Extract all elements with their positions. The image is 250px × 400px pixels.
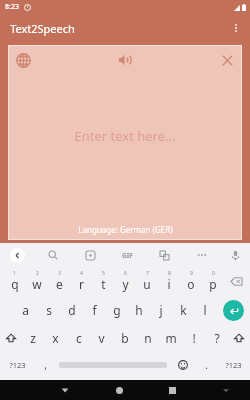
button[interactable]: Search: [34, 243, 72, 267]
staticText: o: [187, 276, 195, 292]
staticText: h: [135, 302, 143, 318]
button[interactable]: v: [90, 324, 113, 352]
button[interactable]: Space: [56, 352, 170, 378]
button[interactable]: 8: [158, 267, 180, 296]
button[interactable]: .: [196, 352, 216, 378]
button[interactable]: Translate: [146, 243, 183, 267]
button[interactable]: !: [182, 324, 205, 352]
button[interactable]: d: [60, 296, 83, 324]
staticText: 4: [80, 270, 83, 277]
staticText: 5: [102, 270, 105, 277]
button[interactable]: Shift: [0, 324, 22, 352]
staticText: 1: [13, 270, 16, 277]
button[interactable]: Clear text: [212, 45, 242, 75]
staticText: ?: [214, 330, 220, 346]
staticText: u: [143, 276, 151, 292]
button[interactable]: g: [106, 296, 128, 324]
staticText: t: [101, 276, 106, 292]
staticText: g: [113, 302, 121, 318]
button[interactable]: k: [172, 296, 194, 324]
button[interactable]: Speak text: [111, 46, 139, 74]
button[interactable]: Stickers: [72, 243, 109, 267]
button[interactable]: Back: [0, 243, 34, 267]
button[interactable]: Hide keyboard: [216, 380, 236, 400]
staticText: s: [46, 302, 52, 318]
button[interactable]: 9: [180, 267, 202, 296]
staticText: q: [11, 276, 19, 292]
button[interactable]: 3: [48, 267, 70, 296]
staticText: 8:23: [5, 2, 19, 12]
button[interactable]: z: [22, 324, 44, 352]
button[interactable]: c: [67, 324, 90, 352]
button[interactable]: Voice input: [220, 243, 250, 267]
button[interactable]: m: [159, 324, 182, 352]
button[interactable]: Language: German (GER): [8, 218, 242, 240]
staticText: 8: [168, 270, 171, 277]
button[interactable]: 6: [114, 267, 136, 296]
staticText: x: [52, 330, 59, 346]
staticText: ?123: [9, 360, 26, 370]
button[interactable]: More options: [183, 243, 220, 267]
staticText: 6: [124, 270, 127, 277]
staticText: r: [79, 276, 84, 292]
staticText: p: [209, 276, 217, 292]
button[interactable]: Backspace: [224, 267, 248, 296]
staticText: d: [68, 302, 76, 318]
button[interactable]: n: [136, 324, 159, 352]
button[interactable]: l: [194, 296, 216, 324]
button[interactable]: s: [37, 296, 60, 324]
button[interactable]: 5: [92, 267, 114, 296]
staticText: 2: [36, 270, 39, 277]
staticText: f: [92, 302, 97, 318]
staticText: Text2Speech: [10, 21, 75, 36]
staticText: a: [22, 302, 29, 318]
button[interactable]: Emoji: [170, 352, 196, 378]
staticText: k: [180, 302, 187, 318]
button[interactable]: Shift: [228, 324, 250, 352]
button[interactable]: a: [14, 296, 37, 324]
button[interactable]: ,: [34, 352, 56, 378]
button[interactable]: ?123: [0, 352, 34, 378]
button[interactable]: 2: [26, 267, 48, 296]
staticText: z: [30, 330, 36, 346]
button[interactable]: Enter text here...: [8, 75, 242, 218]
button[interactable]: GIF: [109, 243, 146, 267]
staticText: Language: German (GER): [78, 224, 173, 235]
staticText: l: [203, 302, 207, 318]
staticText: Enter text here...: [74, 127, 176, 145]
staticText: 3: [58, 270, 61, 277]
button[interactable]: f: [83, 296, 106, 324]
button[interactable]: h: [128, 296, 150, 324]
button[interactable]: x: [44, 324, 67, 352]
staticText: 7: [146, 270, 149, 277]
staticText: n: [144, 330, 152, 346]
staticText: v: [98, 330, 105, 346]
button[interactable]: Enter: [216, 296, 250, 324]
button[interactable]: b: [113, 324, 136, 352]
staticText: GIF: [122, 251, 133, 260]
staticText: w: [32, 276, 42, 292]
button[interactable]: 4: [70, 267, 92, 296]
button[interactable]: Back: [55, 380, 75, 400]
staticText: e: [56, 276, 63, 292]
staticText: b: [121, 330, 129, 346]
button[interactable]: j: [150, 296, 172, 324]
staticText: .: [205, 358, 208, 372]
button[interactable]: More options: [222, 14, 250, 42]
staticText: 0: [212, 270, 215, 277]
button[interactable]: Recent apps: [162, 380, 182, 400]
staticText: i: [167, 276, 171, 292]
button[interactable]: Select language: [8, 45, 38, 75]
staticText: ?123: [225, 360, 242, 370]
button[interactable]: 0: [202, 267, 224, 296]
button[interactable]: Home: [109, 380, 129, 400]
staticText: !: [192, 330, 196, 346]
staticText: ,: [44, 358, 47, 372]
staticText: m: [165, 330, 177, 346]
staticText: 9: [190, 270, 193, 277]
staticText: c: [76, 330, 82, 346]
button[interactable]: ?123: [216, 352, 250, 378]
button[interactable]: 1: [3, 267, 26, 296]
button[interactable]: 7: [136, 267, 158, 296]
button[interactable]: ?: [205, 324, 228, 352]
